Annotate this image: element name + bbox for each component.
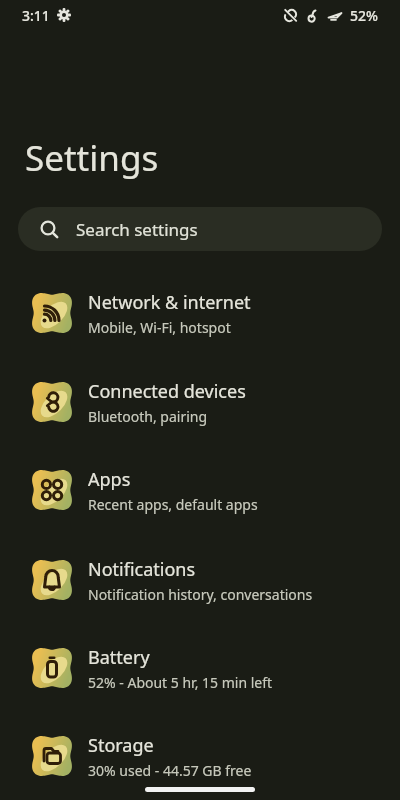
- button[interactable]: Storage: [0, 712, 400, 800]
- button[interactable]: Notifications: [0, 536, 400, 624]
- staticText: Storage: [88, 733, 154, 758]
- button[interactable]: Network & internet: [0, 269, 400, 357]
- staticText: Notification history, conversations: [88, 585, 313, 604]
- button[interactable]: Search settings: [18, 207, 382, 251]
- staticText: 3:11: [22, 6, 50, 25]
- staticText: Search settings: [76, 218, 198, 241]
- staticText: 52% - About 5 hr, 15 min left: [88, 673, 273, 692]
- staticText: Settings: [25, 134, 159, 182]
- staticText: Connected devices: [88, 379, 246, 404]
- staticText: 52%: [350, 6, 378, 25]
- staticText: Battery: [88, 645, 150, 670]
- staticText: Recent apps, default apps: [88, 495, 258, 514]
- staticText: Apps: [88, 467, 131, 492]
- button[interactable]: Apps: [0, 446, 400, 534]
- staticText: Bluetooth, pairing: [88, 407, 208, 426]
- button[interactable]: Battery: [0, 624, 400, 712]
- staticText: 30% used - 44.57 GB free: [88, 761, 252, 780]
- staticText: Mobile, Wi-Fi, hotspot: [88, 318, 231, 337]
- staticText: Notifications: [88, 557, 196, 582]
- button[interactable]: Connected devices: [0, 358, 400, 446]
- staticText: Network & internet: [88, 290, 251, 315]
